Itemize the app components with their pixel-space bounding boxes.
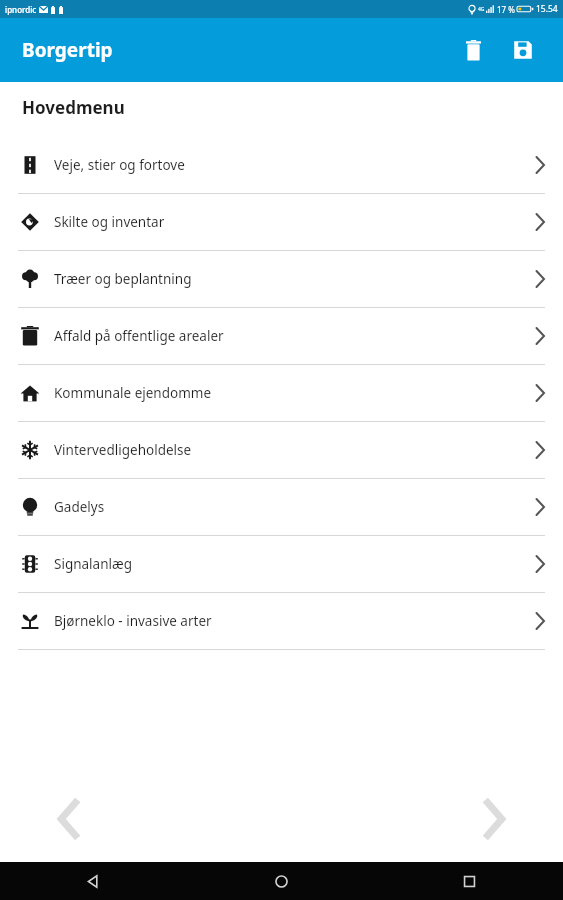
button[interactable]: Delete xyxy=(451,28,495,72)
staticText: Bjørneklo - invasive arter xyxy=(54,612,212,630)
button[interactable]: Skilte og inventar xyxy=(0,194,563,251)
staticText: Affald på offentlige arealer xyxy=(54,327,224,345)
staticText: 4G xyxy=(478,6,485,13)
button[interactable]: Gadelys xyxy=(0,479,563,536)
staticText: Veje, stier og fortove xyxy=(54,156,185,174)
button[interactable]: Back xyxy=(0,862,187,900)
button[interactable]: Veje, stier og fortove xyxy=(0,137,563,194)
button[interactable]: Previous xyxy=(42,791,98,847)
button[interactable]: Signalanlæg xyxy=(0,536,563,593)
staticText: Hovedmenu xyxy=(22,96,125,119)
staticText: Træer og beplantning xyxy=(54,270,192,288)
staticText: 15.54 xyxy=(536,3,558,15)
button[interactable]: Affald på offentlige arealer xyxy=(0,308,563,365)
staticText: Vintervedligeholdelse xyxy=(54,441,192,459)
button[interactable]: Save xyxy=(501,28,545,72)
button[interactable]: Træer og beplantning xyxy=(0,251,563,308)
staticText: 17 % xyxy=(497,4,515,15)
staticText: Skilte og inventar xyxy=(54,213,165,231)
staticText: Borgertip xyxy=(22,37,113,63)
button[interactable]: Vintervedligeholdelse xyxy=(0,422,563,479)
staticText: Gadelys xyxy=(54,498,105,516)
staticText: Kommunale ejendomme xyxy=(54,384,212,402)
button[interactable]: Kommunale ejendomme xyxy=(0,365,563,422)
button[interactable]: Bjørneklo - invasive arter xyxy=(0,593,563,650)
button[interactable]: Recent apps xyxy=(375,862,563,900)
button[interactable]: Next xyxy=(465,791,521,847)
staticText: Signalanlæg xyxy=(54,555,132,573)
staticText: ipnordic xyxy=(5,4,37,15)
button[interactable]: Home xyxy=(187,862,375,900)
